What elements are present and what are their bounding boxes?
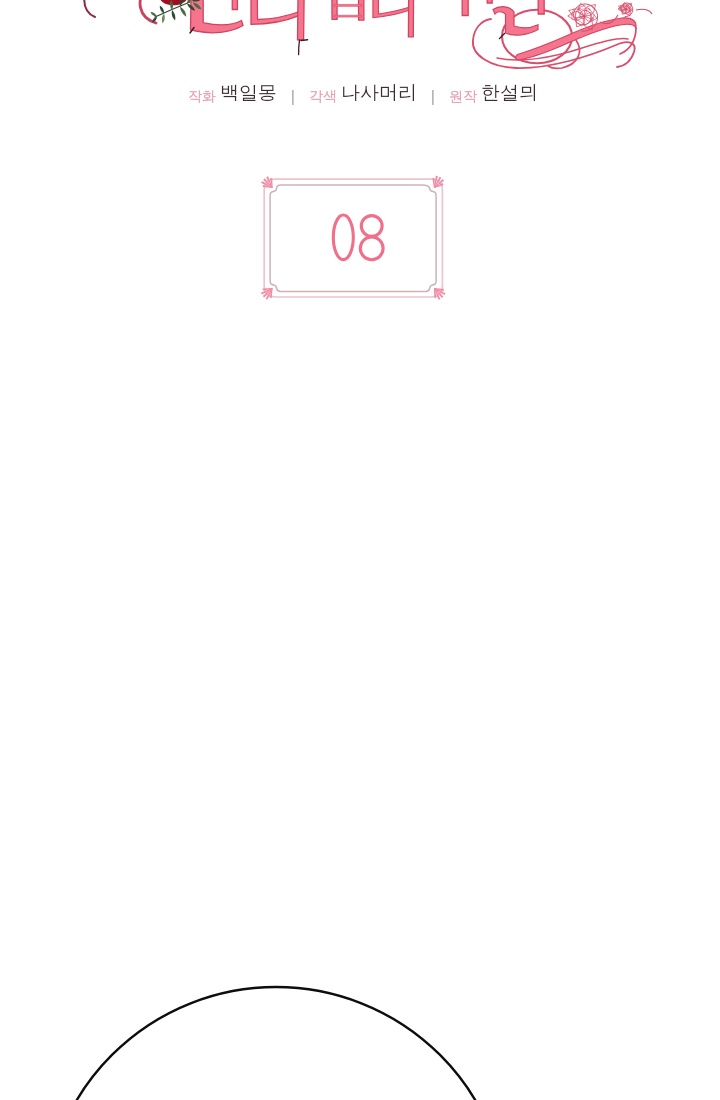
staticText: 작화	[188, 86, 220, 105]
button[interactable]: Episode 08	[264, 179, 443, 297]
staticText: 각색	[309, 86, 341, 105]
staticText: |	[277, 85, 309, 105]
staticText: 백일몽	[220, 81, 277, 105]
staticText: 나사머리	[341, 81, 417, 105]
staticText: 원작	[449, 86, 481, 105]
staticText: |	[417, 85, 449, 105]
staticText: 한설믜	[481, 81, 538, 105]
